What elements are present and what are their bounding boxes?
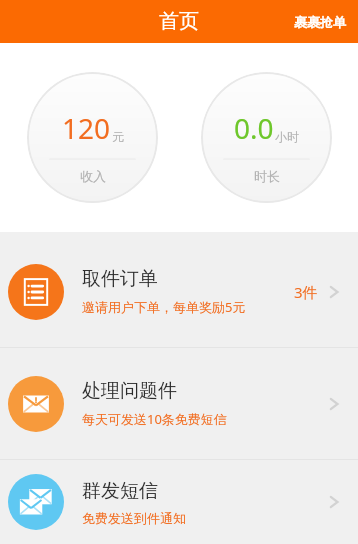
staticText: 元 xyxy=(112,129,124,144)
staticText: 3件 xyxy=(294,282,318,302)
staticText: 小时 xyxy=(275,129,299,144)
button[interactable]: 裹裹抢单 xyxy=(282,4,358,40)
other: 处理问题件 xyxy=(8,376,64,432)
button[interactable]: 处理问题件 xyxy=(0,348,358,459)
staticText: 裹裹抢单 xyxy=(294,14,346,30)
staticText: 时长 xyxy=(254,168,280,184)
staticText: 首页 xyxy=(159,9,199,34)
staticText: 收入 xyxy=(80,168,106,184)
staticText: 0.0 xyxy=(234,109,274,147)
button[interactable]: 0.0 xyxy=(201,72,332,203)
staticText: 每天可发送10条免费短信 xyxy=(82,410,227,428)
other: 群发短信 xyxy=(8,474,64,530)
button[interactable]: 120 xyxy=(27,72,158,203)
staticText: 群发短信 xyxy=(82,479,158,503)
staticText: 取件订单 xyxy=(82,267,158,291)
staticText: 120 xyxy=(62,109,111,147)
staticText: 免费发送到件通知 xyxy=(82,510,186,526)
button[interactable]: 群发短信 xyxy=(0,460,358,544)
other: 取件订单 xyxy=(8,264,64,320)
staticText: 邀请用户下单，每单奖励5元 xyxy=(82,298,246,316)
button[interactable]: 取件订单 xyxy=(0,236,358,347)
staticText: 处理问题件 xyxy=(82,379,177,403)
